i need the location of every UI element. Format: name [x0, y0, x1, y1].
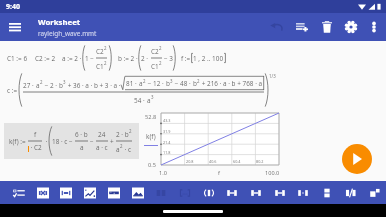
button[interactable]: More options — [363, 13, 385, 41]
button[interactable]: Determinant — [54, 181, 77, 204]
staticText: 2 — [104, 45, 107, 51]
staticText: a — [147, 96, 151, 105]
staticText: 2 · b — [116, 130, 129, 139]
button[interactable]: Align right — [268, 181, 291, 204]
staticText: − — [90, 137, 94, 146]
button[interactable]: Settings — [340, 13, 362, 41]
staticText: + — [110, 137, 114, 146]
button[interactable]: Align left — [220, 181, 243, 204]
button[interactable]: Align middle — [315, 181, 338, 204]
button[interactable]: Brackets — [173, 181, 196, 204]
staticText: 2 — [40, 79, 43, 85]
staticText: 1.0 — [159, 169, 167, 177]
staticText: 27 · — [23, 81, 36, 90]
staticText: C2 — [96, 47, 104, 56]
staticText: b — [166, 79, 170, 88]
staticText: · — [44, 137, 48, 146]
staticText: f — [218, 169, 220, 177]
staticText: a — [139, 79, 143, 88]
staticText: 81 · — [126, 79, 139, 88]
staticText: 20.8 — [186, 159, 194, 164]
button[interactable]: Picture — [126, 181, 149, 204]
staticText: 2 — [120, 143, 123, 149]
staticText: 100.0 — [265, 169, 280, 177]
staticText: 18 · c − — [52, 137, 73, 146]
staticText: 80.2 — [256, 159, 264, 164]
staticText: f — [34, 130, 37, 139]
staticText: + 216 · a · b + 768 · a — [200, 79, 263, 88]
staticText: − 12 · — [146, 79, 166, 88]
button[interactable]: Group — [363, 181, 386, 204]
staticText: 40.6 — [209, 159, 217, 164]
staticText: − 3 — [164, 54, 173, 63]
staticText: 52.8 — [145, 113, 157, 121]
staticText: 2 — [159, 60, 162, 66]
staticText: 1 , 2 .. 100 — [193, 54, 224, 63]
staticText: 24 — [98, 130, 106, 139]
staticText: 1/3 — [269, 73, 276, 79]
staticText: 21.4 — [163, 140, 171, 145]
button[interactable]: Align bottom — [339, 181, 362, 204]
button[interactable]: Align center — [244, 181, 267, 204]
staticText: · C2 — [29, 143, 42, 152]
staticText: 43.3 — [163, 118, 171, 123]
staticText: − 48 · — [173, 79, 193, 88]
button[interactable]: Align top — [291, 181, 314, 204]
staticText: k(f) — [146, 132, 156, 141]
staticText: C2 — [151, 47, 159, 56]
staticText: 2 — [197, 78, 200, 84]
staticText: 60.4 — [233, 159, 241, 164]
staticText: 3 — [151, 94, 154, 100]
staticText: 3 — [63, 79, 66, 85]
staticText: c := — [7, 86, 18, 95]
staticText: 6 · b — [75, 130, 88, 139]
staticText: + 36 · a · b + 3 · a · — [66, 81, 121, 90]
staticText: C2 := 2 — [35, 54, 56, 63]
staticText: a — [80, 143, 84, 152]
staticText: b := 2 · — [118, 54, 138, 63]
button[interactable]: Text region — [102, 181, 125, 204]
staticText: 31.9 — [163, 129, 171, 134]
staticText: C1 := 6 — [7, 54, 28, 63]
staticText: a — [36, 81, 40, 90]
staticText: k(f) := — [9, 137, 26, 146]
staticText: 2 — [104, 60, 107, 66]
staticText: 2 — [129, 128, 132, 134]
staticText: b — [59, 81, 63, 90]
button[interactable]: Undo — [265, 13, 287, 41]
staticText: C1 — [151, 62, 159, 71]
staticText: − 2 · — [43, 81, 59, 90]
button[interactable]: Delete — [316, 13, 338, 41]
button[interactable]: Equation — [7, 181, 30, 204]
button[interactable]: Two regions — [149, 181, 172, 204]
button[interactable]: Matrix — [31, 181, 54, 204]
staticText: · c — [123, 145, 132, 154]
button[interactable]: Open navigation menu — [3, 15, 27, 39]
staticText: a — [116, 145, 120, 154]
staticText: f := — [181, 54, 191, 63]
button[interactable]: Run worksheet — [342, 144, 372, 174]
staticText: Worksheet — [38, 17, 81, 28]
staticText: b — [193, 79, 197, 88]
staticText: 1 − — [85, 54, 94, 63]
staticText: 54 · — [134, 96, 147, 105]
button[interactable]: 2D plot — [78, 181, 101, 204]
button[interactable]: Parentheses — [197, 181, 220, 204]
staticText: 2 — [143, 78, 146, 84]
staticText: rayleigh_wave.mmt — [38, 29, 97, 38]
staticText: C1 — [96, 62, 104, 71]
button[interactable]: Insert row — [291, 13, 313, 41]
staticText: 2 · — [141, 54, 149, 63]
staticText: 11.8 — [163, 150, 171, 155]
staticText: 2 — [159, 45, 162, 51]
staticText: 3 — [170, 78, 173, 84]
staticText: 0.5 — [148, 161, 156, 169]
staticText: a · c — [96, 143, 108, 152]
staticText: a := 2 · — [62, 54, 82, 63]
staticText: 9:40 — [6, 2, 20, 12]
